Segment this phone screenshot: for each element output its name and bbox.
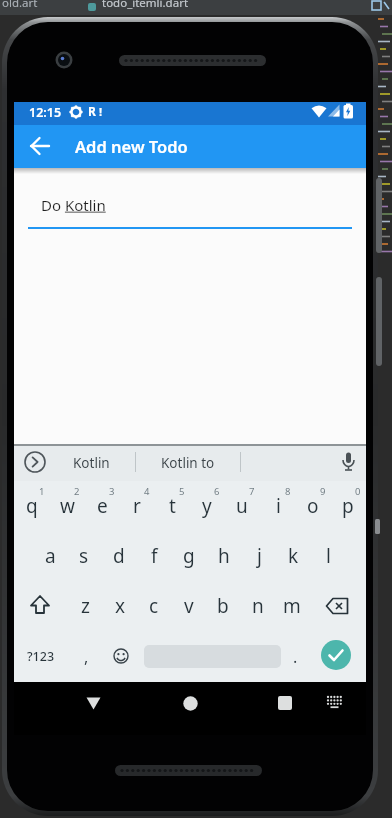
button[interactable]: [23, 129, 59, 163]
button[interactable]: Kotlin: [46, 448, 136, 478]
staticText: g: [183, 543, 195, 569]
button[interactable]: f: [132, 538, 176, 574]
button[interactable]: i: [256, 488, 300, 524]
staticText: 5: [179, 485, 185, 498]
staticText: 1: [39, 485, 45, 498]
button[interactable]: [278, 696, 292, 710]
staticText: old.art: [2, 0, 38, 11]
button[interactable]: [107, 642, 135, 670]
staticText: Add new Todo: [75, 135, 188, 157]
staticText: a: [45, 543, 56, 569]
button[interactable]: ,: [64, 639, 108, 675]
staticText: 8: [285, 485, 291, 498]
button[interactable]: j: [237, 538, 281, 574]
staticText: f: [151, 543, 158, 569]
staticText: p: [342, 493, 354, 519]
button[interactable]: o: [291, 488, 335, 524]
button[interactable]: g: [167, 538, 211, 574]
button[interactable]: k: [271, 538, 315, 574]
staticText: s: [79, 543, 89, 569]
button[interactable]: [322, 691, 347, 713]
button[interactable]: Kotlin to: [140, 448, 236, 478]
button[interactable]: v: [167, 588, 211, 624]
button[interactable]: ?123: [19, 638, 63, 674]
button[interactable]: e: [80, 488, 124, 524]
staticText: m: [283, 593, 301, 619]
staticText: todo_itemli.dart: [102, 0, 189, 11]
button[interactable]: w: [45, 488, 89, 524]
button[interactable]: q: [10, 488, 54, 524]
button[interactable]: b: [201, 588, 245, 624]
button[interactable]: c: [132, 588, 176, 624]
staticText: h: [218, 543, 230, 569]
button[interactable]: [26, 592, 54, 620]
staticText: z: [81, 593, 90, 619]
staticText: d: [113, 543, 125, 569]
staticText: 0: [355, 485, 361, 498]
staticText: ?123: [27, 648, 55, 665]
button[interactable]: m: [270, 588, 314, 624]
staticText: l: [326, 543, 331, 569]
button[interactable]: l: [306, 538, 350, 574]
staticText: x: [115, 593, 126, 619]
staticText: !: [99, 104, 103, 119]
button[interactable]: z: [63, 588, 107, 624]
button[interactable]: n: [236, 588, 280, 624]
button[interactable]: r: [115, 488, 159, 524]
staticText: u: [236, 493, 248, 519]
button[interactable]: t: [150, 488, 194, 524]
staticText: R: [88, 103, 96, 119]
button[interactable]: [321, 640, 351, 670]
staticText: o: [307, 493, 319, 519]
button[interactable]: [334, 448, 362, 476]
staticText: Kotlin: [73, 454, 110, 472]
staticText: Do Kotlin: [41, 195, 106, 215]
staticText: c: [149, 593, 159, 619]
staticText: n: [252, 593, 264, 619]
button[interactable]: [28, 185, 352, 231]
button[interactable]: s: [62, 538, 106, 574]
staticText: ,: [84, 646, 89, 668]
staticText: v: [184, 593, 194, 619]
button[interactable]: h: [202, 538, 246, 574]
staticText: w: [60, 493, 75, 519]
button[interactable]: u: [220, 488, 264, 524]
staticText: 4: [144, 485, 150, 498]
staticText: Kotlin to: [161, 454, 215, 472]
button[interactable]: x: [98, 588, 142, 624]
button[interactable]: p: [326, 488, 370, 524]
button[interactable]: d: [97, 538, 141, 574]
button[interactable]: [24, 451, 46, 473]
staticText: b: [217, 593, 229, 619]
staticText: .: [293, 646, 298, 668]
button[interactable]: [183, 696, 198, 711]
button[interactable]: a: [28, 538, 72, 574]
staticText: e: [97, 493, 108, 519]
staticText: r: [133, 493, 141, 519]
staticText: q: [26, 493, 38, 519]
staticText: 6: [214, 485, 220, 498]
button[interactable]: [86, 697, 101, 710]
staticText: 9: [320, 485, 326, 498]
staticText: y: [202, 493, 212, 519]
staticText: 12:15: [29, 104, 62, 121]
button[interactable]: .: [273, 639, 317, 675]
staticText: 3: [109, 485, 115, 498]
button[interactable]: y: [185, 488, 229, 524]
staticText: 2: [74, 485, 80, 498]
staticText: k: [288, 543, 299, 569]
staticText: j: [257, 543, 262, 569]
staticText: t: [169, 493, 176, 519]
staticText: i: [276, 493, 281, 519]
button[interactable]: [323, 596, 351, 618]
staticText: 7: [249, 485, 255, 498]
